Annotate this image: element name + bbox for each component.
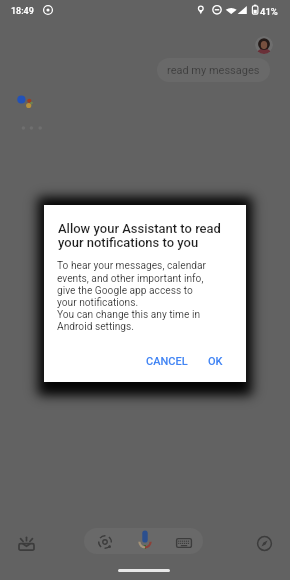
button[interactable]: CANCEL bbox=[141, 350, 193, 373]
button[interactable]: Google Lens bbox=[84, 528, 125, 554]
staticText: CANCEL bbox=[146, 355, 188, 368]
staticText: 41% bbox=[260, 6, 278, 17]
button[interactable]: Snapshot bbox=[6, 524, 46, 564]
staticText: 18:49 bbox=[11, 6, 34, 17]
button[interactable]: OK bbox=[203, 350, 228, 373]
staticText: OK bbox=[208, 355, 223, 368]
button[interactable]: Explore bbox=[244, 523, 284, 563]
button[interactable]: Microphone bbox=[125, 528, 164, 554]
staticText: Allow your Assistant to read your notifi… bbox=[58, 221, 221, 250]
staticText: read my messages bbox=[167, 64, 260, 77]
button[interactable]: Keyboard bbox=[164, 528, 203, 554]
staticText: To hear your messages, calendar events, … bbox=[57, 260, 207, 332]
